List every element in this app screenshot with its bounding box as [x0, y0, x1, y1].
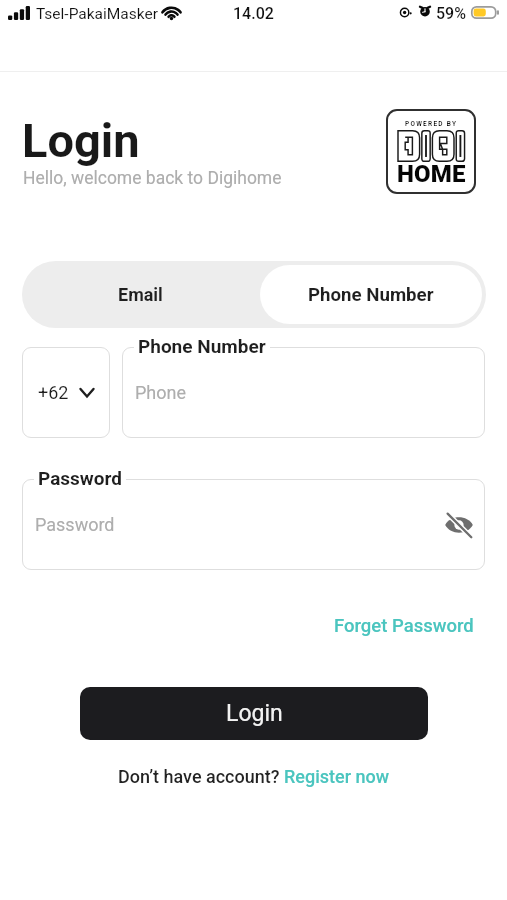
staticText: Phone Number: [138, 335, 266, 357]
staticText: Password: [38, 467, 122, 489]
button[interactable]: Phone Number: [260, 265, 482, 324]
staticText: Email: [118, 284, 163, 305]
staticText: Hello, welcome back to Digihome: [23, 168, 282, 189]
staticText: Tsel-PakaiMasker: [36, 5, 158, 23]
staticText: Forget Password: [334, 615, 474, 637]
staticText: POWERED BY: [405, 120, 458, 128]
button[interactable]: Register now: [284, 766, 390, 787]
staticText: Login: [22, 113, 140, 168]
staticText: 14.02: [233, 4, 274, 23]
staticText: +62: [38, 382, 69, 403]
button[interactable]: Forget Password: [324, 613, 507, 641]
button[interactable]: Email: [26, 265, 260, 324]
staticText: HOME: [397, 160, 466, 188]
button[interactable]: Show password: [440, 506, 478, 544]
staticText: Password: [35, 514, 440, 535]
staticText: 59%: [436, 4, 466, 23]
staticText: Phone Number: [308, 284, 434, 306]
staticText: Phone: [135, 382, 478, 403]
button[interactable]: Login: [80, 687, 428, 740]
button[interactable]: +62: [22, 347, 110, 438]
staticText: Login: [226, 700, 283, 727]
staticText: Don’t have account?: [118, 766, 284, 787]
